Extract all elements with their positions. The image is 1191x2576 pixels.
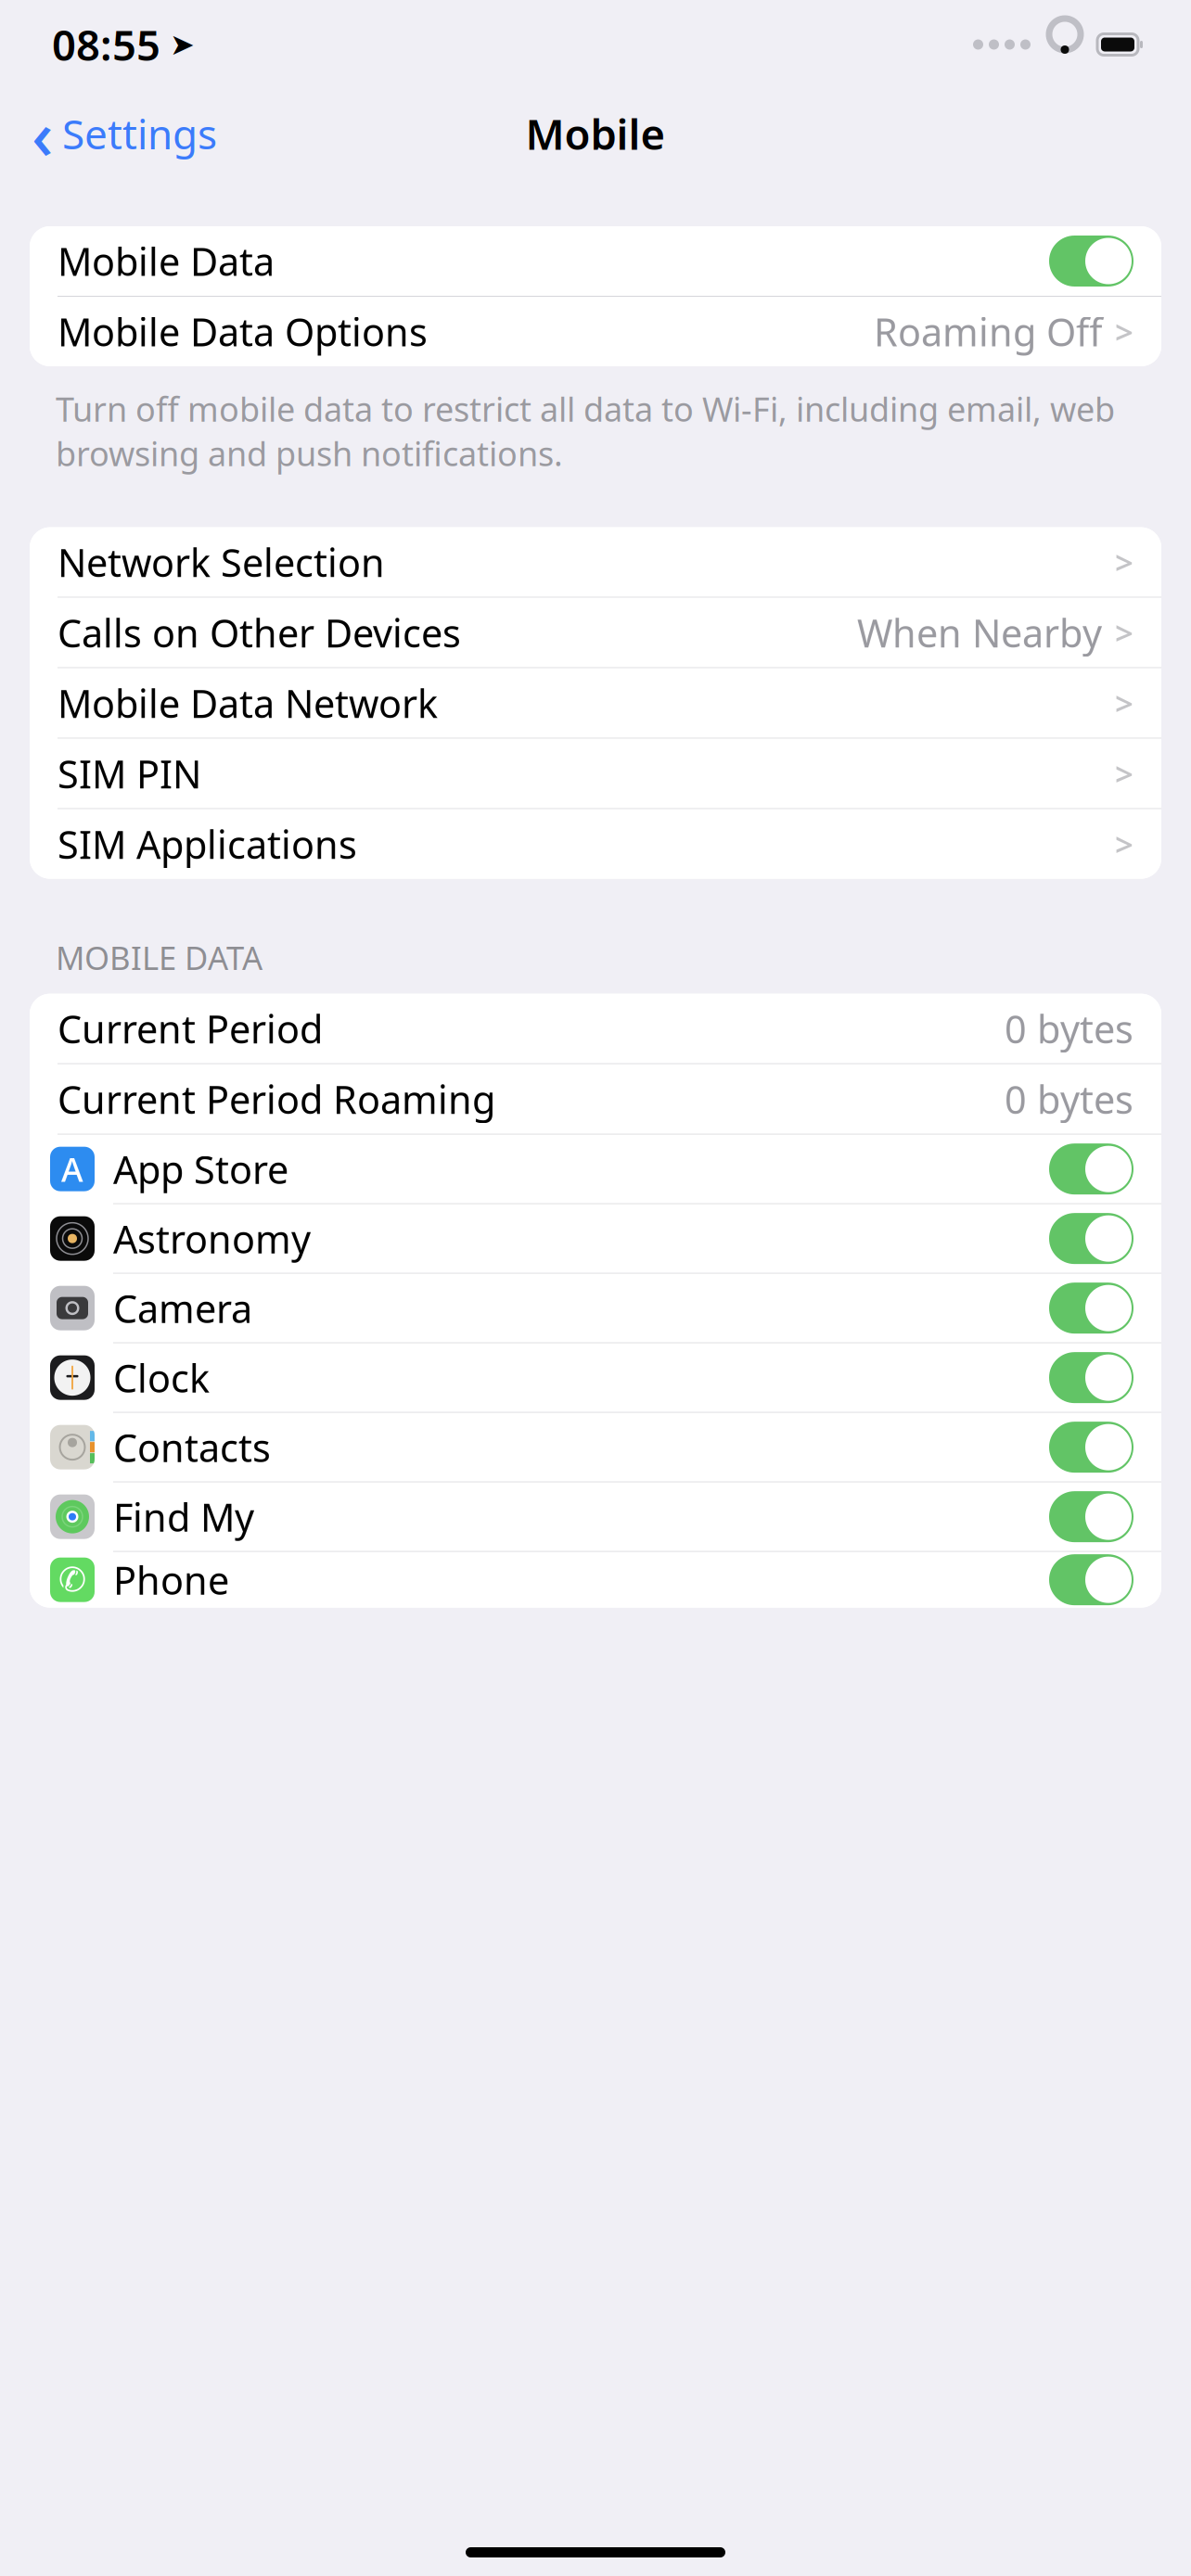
staticText: ✆ [58,1561,86,1599]
staticText: Roaming Off [874,306,1102,357]
staticText: Phone [113,1554,229,1605]
button[interactable]: Camera [30,1274,1161,1342]
staticText: Turn off mobile data to restrict all dat… [56,387,1115,475]
button[interactable]: Calls on Other Devices [30,598,1161,667]
staticText: > [1115,682,1133,724]
staticText: > [1115,310,1133,353]
staticText: > [1115,611,1133,654]
staticText: > [1115,823,1133,865]
staticText: 08:55 [52,17,160,72]
button[interactable]: A [30,1135,1161,1203]
button[interactable]: SIM PIN [30,739,1161,808]
staticText: Current Period [58,1003,323,1054]
button[interactable]: Astronomy [30,1204,1161,1273]
staticText: Mobile Data [58,236,275,287]
staticText: Clock [113,1352,210,1403]
staticText: Find My [113,1491,254,1542]
button[interactable]: Mobile Data Options [30,297,1161,366]
button[interactable]: Contacts [30,1413,1161,1481]
staticText: Network Selection [58,537,385,588]
staticText: Astronomy [113,1213,311,1264]
staticText: > [1115,752,1133,795]
staticText: Mobile [525,106,666,161]
staticText: 0 bytes [1005,1074,1133,1124]
staticText: A [61,1147,83,1191]
staticText: ➤ [170,28,195,61]
staticText: Mobile Data Network [58,678,438,728]
staticText: ‹ [32,89,53,178]
button[interactable]: Mobile Data Network [30,668,1161,738]
button[interactable]: Find My [30,1482,1161,1551]
button[interactable]: ‹ [0,84,217,183]
staticText: SIM PIN [58,748,201,799]
button[interactable]: Clock [30,1343,1161,1412]
staticText: Mobile Data Options [58,306,428,357]
staticText: Contacts [113,1422,271,1473]
staticText: SIM Applications [58,819,357,869]
staticText: Current Period Roaming [58,1074,495,1124]
button[interactable]: Mobile Data [30,226,1161,296]
staticText: 0 bytes [1005,1003,1133,1054]
staticText: MOBILE DATA [56,936,263,979]
staticText: Camera [113,1283,252,1334]
button[interactable]: ✆ [30,1552,1161,1608]
button[interactable]: SIM Applications [30,809,1161,879]
staticText: App Store [113,1144,288,1194]
staticText: When Nearby [857,607,1102,658]
staticText: Calls on Other Devices [58,607,461,658]
staticText: > [1115,541,1133,583]
staticText: Settings [62,106,217,161]
button[interactable]: Network Selection [30,527,1161,597]
